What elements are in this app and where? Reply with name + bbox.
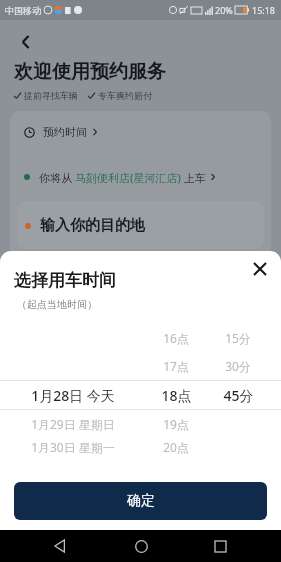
staticText: 30分 [225, 358, 251, 374]
staticText: 1月28日 今天 [31, 386, 115, 405]
button[interactable]: Back [42, 530, 80, 562]
button[interactable]: 输入你的目的地 [17, 201, 264, 249]
button[interactable]: Recents [201, 530, 239, 562]
staticText: 1月30日 星期一 [31, 439, 115, 455]
staticText: 45分 [223, 386, 254, 405]
staticText: 15:18 [252, 4, 276, 16]
staticText: 专车爽约赔付 [98, 90, 152, 101]
button[interactable]: Home [122, 530, 160, 562]
button[interactable]: Close [245, 254, 275, 284]
button[interactable]: 确定 [14, 482, 267, 520]
staticText: 提前寻找车辆 [24, 90, 78, 101]
staticText: 20% [215, 4, 233, 16]
button[interactable]: Back [10, 26, 42, 58]
staticText: 马刻便利店(星河汇店) [75, 170, 181, 185]
staticText: 你将从 [39, 170, 75, 185]
button[interactable]: 预约时间 [10, 111, 271, 153]
staticText: （起点当地时间） [17, 298, 97, 311]
staticText: 确定 [127, 492, 155, 510]
staticText: 1月29日 星期日 [31, 416, 115, 432]
staticText: 15分 [225, 330, 251, 346]
staticText: 输入你的目的地 [40, 216, 145, 235]
staticText: 16点 [163, 330, 189, 346]
staticText: 预约时间 [43, 125, 87, 139]
button[interactable]: 你将从 [10, 153, 271, 201]
staticText: 19点 [163, 416, 189, 432]
staticText: 选择用车时间 [14, 270, 116, 291]
staticText: 18点 [161, 386, 192, 405]
staticText: 20点 [163, 439, 189, 455]
staticText: 上车 [181, 170, 206, 185]
staticText: 17点 [163, 358, 189, 374]
staticText: 欢迎使用预约服务 [14, 60, 166, 84]
staticText: 中国移动 [5, 5, 41, 16]
